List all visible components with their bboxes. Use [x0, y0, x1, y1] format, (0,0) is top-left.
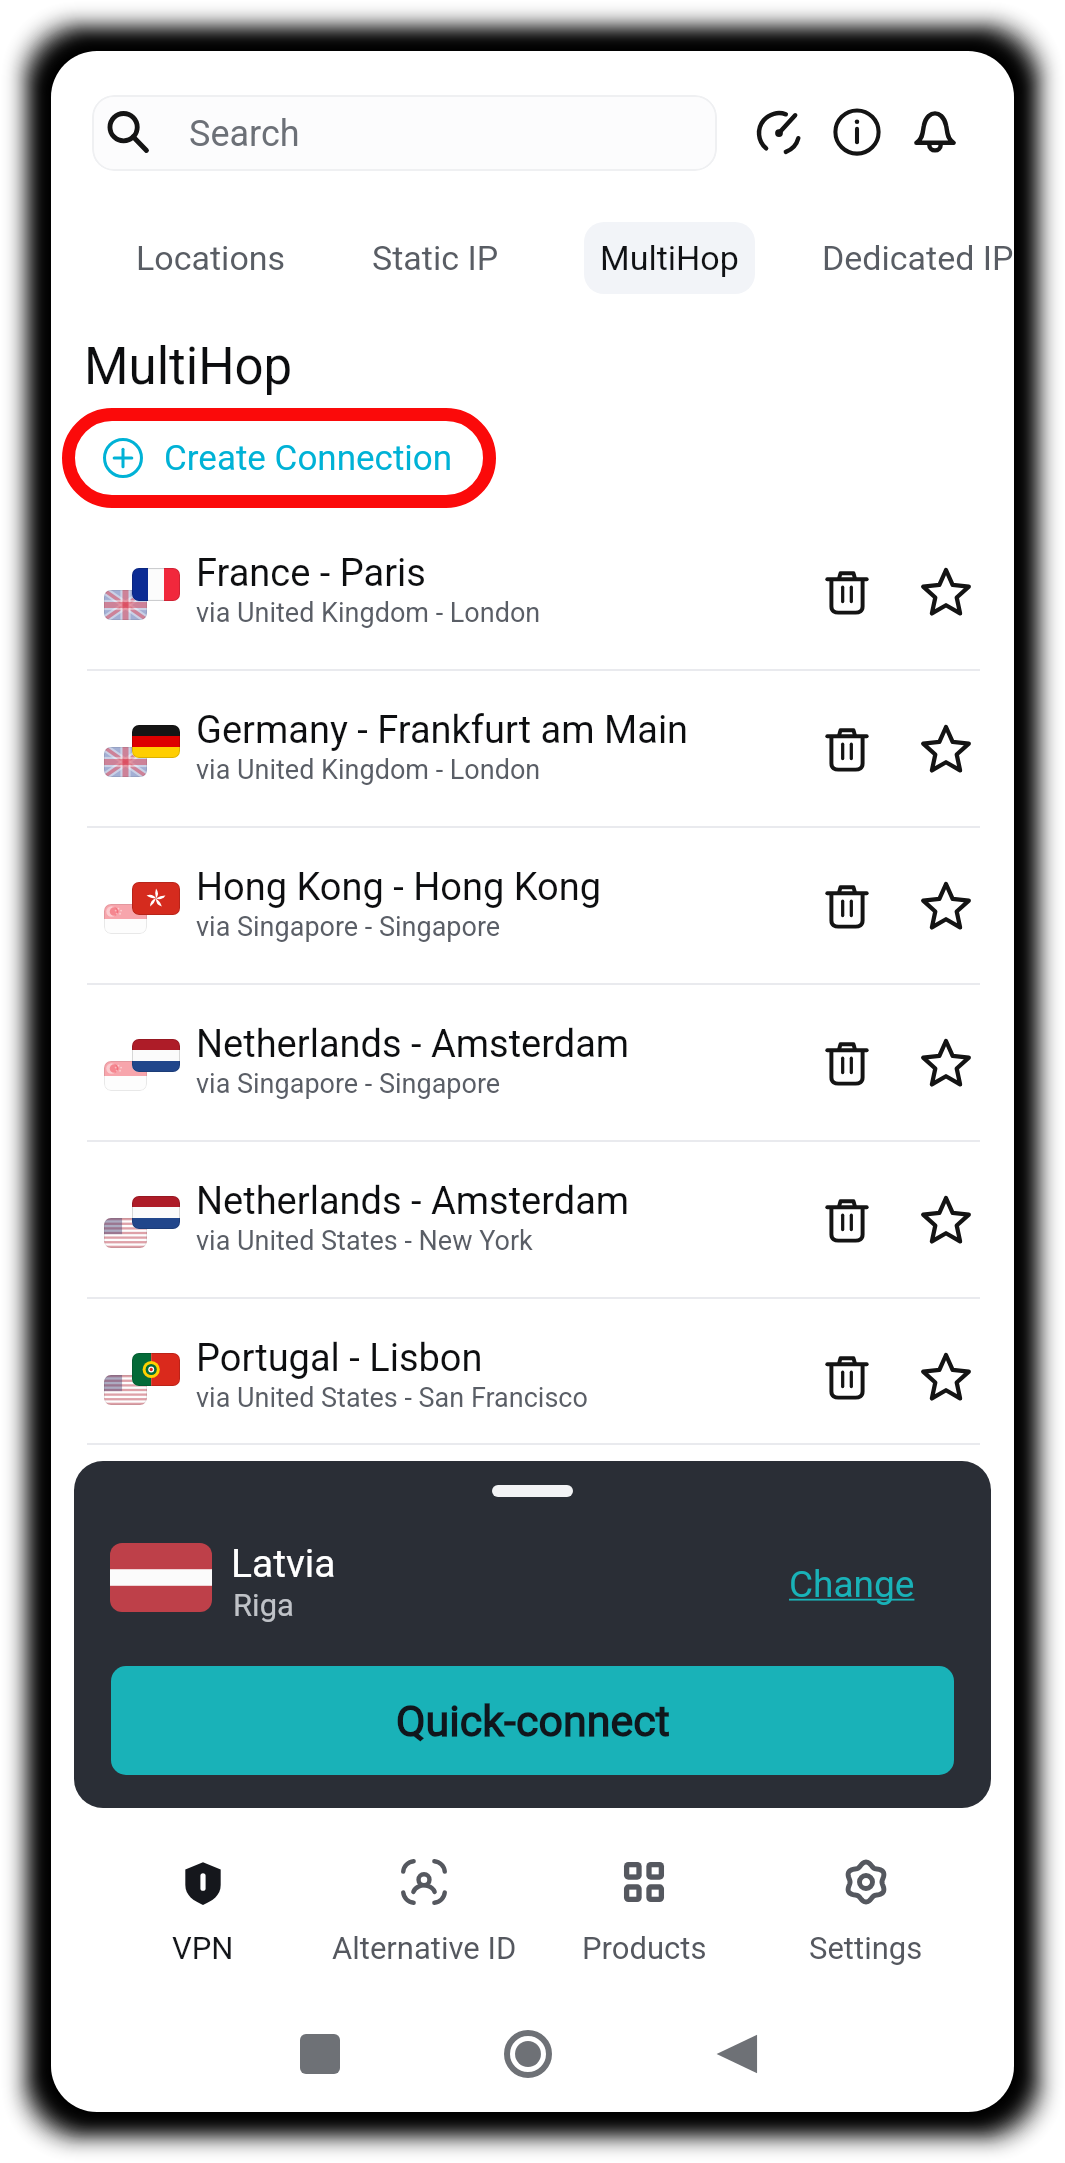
staticText: Germany - Frankfurt am Main	[196, 708, 796, 753]
staticText: via United States - New York	[196, 1225, 816, 1257]
staticText: Create Connection	[164, 438, 453, 479]
button[interactable]: Settings	[756, 1856, 976, 1976]
staticText: Latvia	[231, 1541, 336, 1587]
staticText: Hong Kong - Hong Kong	[196, 865, 796, 910]
button[interactable]: Delete	[816, 1189, 878, 1251]
staticText: Netherlands - Amsterdam	[196, 1022, 796, 1067]
staticText: Locations	[136, 238, 286, 278]
button[interactable]: Favorite	[915, 718, 977, 780]
button[interactable]: Favorite	[915, 1346, 977, 1408]
button[interactable]: Search	[92, 95, 717, 171]
staticText: MultiHop	[600, 238, 739, 278]
button[interactable]: Products	[534, 1856, 754, 1976]
button[interactable]: Delete	[816, 1346, 878, 1408]
button[interactable]: Portugal - Lisbon	[51, 1298, 1014, 1455]
button[interactable]: Favorite	[915, 1189, 977, 1251]
button[interactable]: Delete	[816, 875, 878, 937]
button[interactable]: Delete	[816, 561, 878, 623]
button[interactable]: Quick-connect	[111, 1666, 954, 1775]
button[interactable]: Favorite	[915, 875, 977, 937]
button[interactable]: Speed test	[752, 105, 806, 159]
button[interactable]: Home	[493, 2019, 563, 2089]
staticText: Products	[582, 1930, 707, 1966]
button[interactable]: Notifications	[908, 105, 962, 159]
staticText: Settings	[809, 1930, 923, 1966]
button[interactable]: Favorite	[915, 561, 977, 623]
staticText: via United States - San Francisco	[196, 1382, 816, 1414]
button[interactable]: Hong Kong - Hong Kong	[51, 827, 1014, 984]
staticText: Netherlands - Amsterdam	[196, 1179, 796, 1224]
button[interactable]: Netherlands - Amsterdam	[51, 984, 1014, 1141]
button[interactable]: Locations	[120, 222, 302, 294]
button[interactable]: Netherlands - Amsterdam	[51, 1141, 1014, 1298]
button[interactable]: Change	[779, 1553, 925, 1616]
button[interactable]: Germany - Frankfurt am Main	[51, 670, 1014, 827]
button[interactable]: France - Paris	[51, 513, 1014, 670]
staticText: via Singapore - Singapore	[196, 1068, 816, 1100]
staticText: via Singapore - Singapore	[196, 911, 816, 943]
button[interactable]: Dedicated IP	[806, 222, 1014, 294]
button[interactable]: MultiHop	[584, 222, 755, 294]
staticText: MultiHop	[84, 337, 293, 397]
button[interactable]: Create Connection	[62, 408, 496, 508]
staticText: Alternative ID	[332, 1930, 517, 1966]
button[interactable]: Static IP	[356, 222, 515, 294]
staticText: via United Kingdom - London	[196, 754, 816, 786]
button[interactable]: Information	[830, 105, 884, 159]
staticText: Dedicated IP	[822, 238, 1014, 278]
staticText: via United Kingdom - London	[196, 597, 816, 629]
staticText: France - Paris	[196, 551, 796, 596]
button[interactable]: Delete	[816, 1032, 878, 1094]
staticText: Portugal - Lisbon	[196, 1336, 796, 1381]
button[interactable]: Recents	[285, 2019, 355, 2089]
button[interactable]: Back	[700, 2019, 770, 2089]
button[interactable]: VPN	[93, 1856, 313, 1976]
button[interactable]: Alternative ID	[314, 1856, 534, 1976]
staticText: Search	[189, 113, 300, 155]
staticText: Quick-connect	[396, 1696, 670, 1746]
staticText: Static IP	[372, 238, 499, 278]
button[interactable]: Delete	[816, 718, 878, 780]
button[interactable]: Favorite	[915, 1032, 977, 1094]
staticText: Riga	[233, 1587, 294, 1623]
staticText: Change	[789, 1563, 915, 1606]
staticText: VPN	[172, 1930, 234, 1966]
